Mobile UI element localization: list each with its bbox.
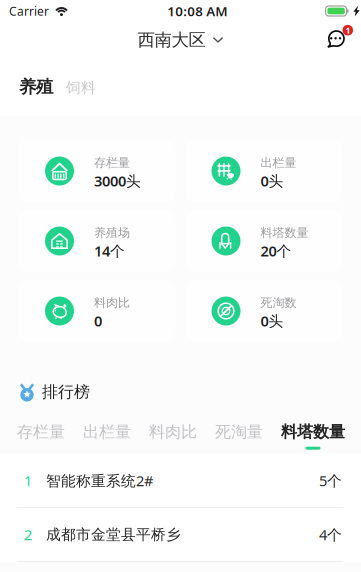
staticText: 智能称重系统2#	[46, 471, 153, 490]
staticText: 出栏量	[83, 422, 131, 442]
button[interactable]: 料塔数量	[185, 210, 342, 272]
staticText: 死淘数	[260, 295, 296, 310]
button[interactable]: 出栏量	[83, 422, 131, 450]
staticText: 0头	[260, 171, 283, 191]
button[interactable]: Messages	[327, 27, 353, 53]
button[interactable]: 2	[0, 508, 361, 561]
staticText: 养殖场	[94, 225, 130, 240]
button[interactable]: 死淘量	[215, 422, 263, 450]
staticText: 养殖	[19, 76, 53, 98]
staticText: 1	[24, 471, 32, 490]
button[interactable]: 1	[0, 454, 361, 507]
staticText: 5个	[319, 471, 342, 490]
button[interactable]: 饲料	[66, 79, 96, 97]
button[interactable]: 料塔数量	[281, 422, 345, 450]
staticText: 死淘量	[215, 422, 263, 442]
button[interactable]: 料肉比	[19, 280, 175, 342]
button[interactable]: 出栏量	[185, 140, 342, 202]
button[interactable]: 西南大区	[137, 29, 223, 51]
staticText: 14个	[94, 241, 125, 261]
staticText: 料塔数量	[281, 422, 345, 442]
staticText: 存栏量	[94, 155, 130, 170]
button[interactable]: 养殖场	[19, 210, 175, 272]
staticText: 排行榜	[42, 382, 90, 402]
staticText: 20个	[260, 241, 291, 261]
staticText: 0	[94, 311, 102, 331]
staticText: 料肉比	[94, 295, 130, 310]
staticText: Carrier	[9, 3, 49, 19]
staticText: 存栏量	[17, 422, 65, 442]
staticText: 10:08 AM	[167, 2, 227, 20]
staticText: 4个	[319, 525, 342, 544]
button[interactable]: 存栏量	[19, 140, 175, 202]
button[interactable]: 养殖	[19, 76, 53, 98]
staticText: 2	[24, 525, 32, 544]
staticText: 0头	[260, 311, 283, 331]
button[interactable]: 存栏量	[17, 422, 65, 450]
staticText: 出栏量	[260, 155, 296, 170]
staticText: 3000头	[94, 171, 141, 191]
staticText: 料肉比	[149, 422, 197, 442]
staticText: 西南大区	[137, 29, 205, 51]
staticText: 饲料	[66, 79, 96, 97]
button[interactable]: 料肉比	[149, 422, 197, 450]
staticText: 料塔数量	[260, 225, 308, 240]
button[interactable]: 死淘数	[185, 280, 342, 342]
staticText: 成都市金堂县平桥乡	[46, 525, 181, 543]
staticText: 1	[345, 24, 350, 36]
